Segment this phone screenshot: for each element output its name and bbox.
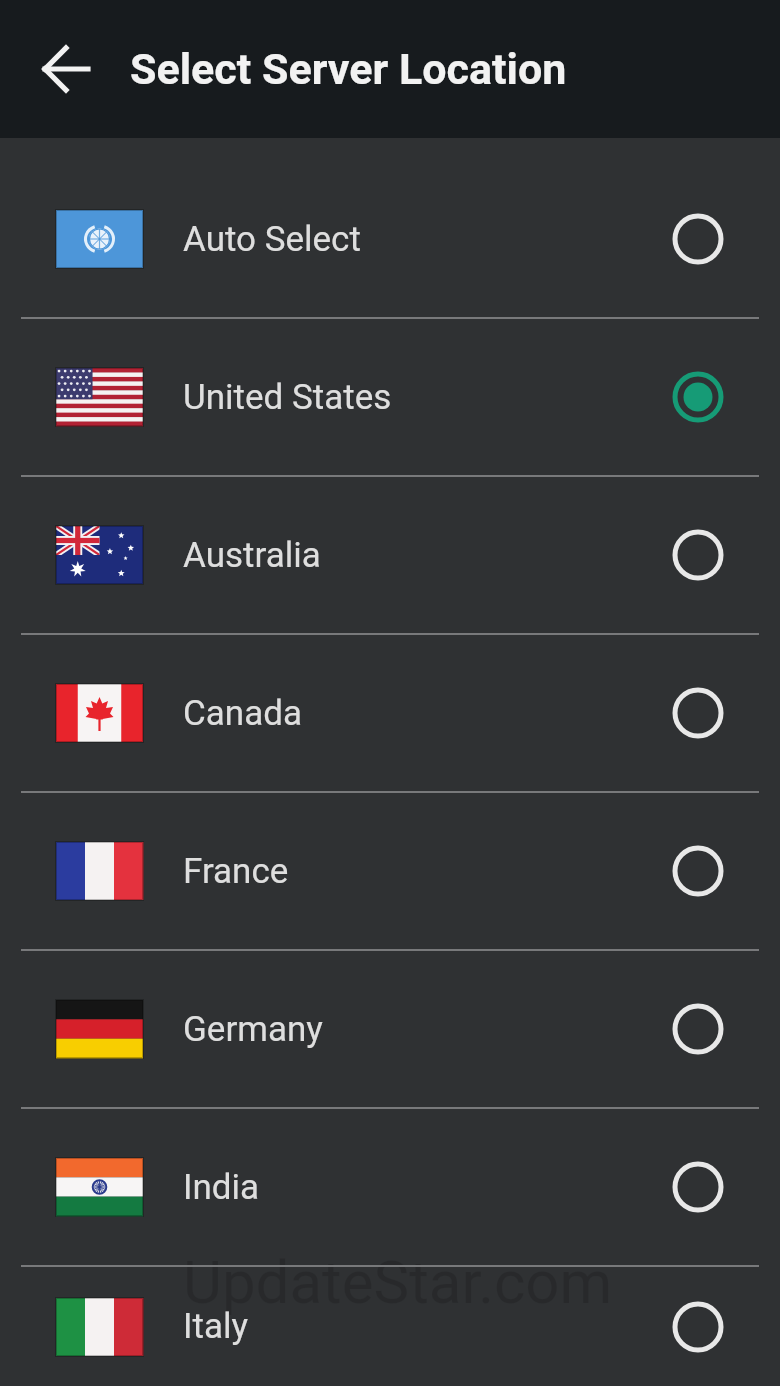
staticText: Italy: [183, 1306, 249, 1347]
button[interactable]: United States: [0, 319, 780, 475]
staticText: France: [183, 851, 289, 892]
staticText: India: [183, 1167, 260, 1208]
button[interactable]: France: [0, 793, 780, 949]
staticText: Australia: [183, 535, 321, 576]
staticText: Auto Select: [183, 219, 361, 260]
button[interactable]: India: [0, 1109, 780, 1265]
button[interactable]: [34, 36, 100, 102]
button[interactable]: Italy: [0, 1267, 780, 1386]
staticText: UpdateStar.com: [183, 1247, 613, 1317]
button[interactable]: Canada: [0, 635, 780, 791]
staticText: United States: [183, 377, 392, 418]
button[interactable]: Auto Select: [0, 161, 780, 317]
button[interactable]: Germany: [0, 951, 780, 1107]
staticText: Germany: [183, 1009, 323, 1050]
button[interactable]: Australia: [0, 477, 780, 633]
staticText: Select Server Location: [130, 44, 567, 94]
staticText: Canada: [183, 693, 302, 734]
